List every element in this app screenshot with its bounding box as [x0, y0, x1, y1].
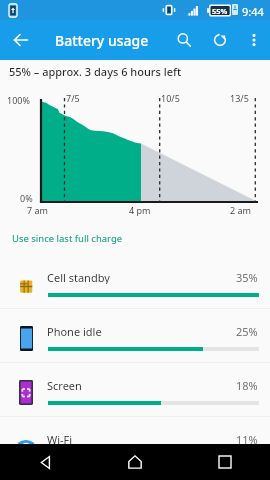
staticText: 25% [236, 324, 258, 338]
staticText: 100% [7, 94, 30, 106]
button[interactable]: Recent apps [180, 444, 270, 480]
staticText: 55% [212, 6, 228, 16]
button[interactable]: Wi-Fi [0, 417, 270, 471]
staticText: 18% [236, 378, 258, 392]
staticText: Phone idle [47, 324, 102, 338]
button[interactable]: Refresh [202, 22, 238, 58]
button[interactable]: Cell standby [0, 255, 270, 309]
staticText: Screen [47, 378, 82, 392]
button[interactable]: More options [238, 24, 270, 56]
button[interactable]: Back [0, 444, 90, 480]
button[interactable]: Home [90, 444, 180, 480]
button[interactable]: Back [0, 20, 42, 60]
staticText: 7 am [27, 204, 48, 216]
staticText: Cell standby [47, 270, 110, 284]
staticText: Use since last full charge [12, 232, 123, 245]
button[interactable]: Screen [0, 363, 270, 417]
staticText: 10/5 [161, 92, 180, 104]
staticText: 4 pm [129, 204, 151, 216]
staticText: 13/5 [230, 92, 249, 104]
staticText: 55% – approx. 3 days 6 hours left [9, 64, 182, 79]
staticText: Battery usage [55, 31, 149, 50]
staticText: 35% [236, 270, 258, 284]
button[interactable]: Search [166, 22, 202, 58]
staticText: 7/5 [66, 92, 80, 104]
staticText: 11% [236, 432, 258, 446]
staticText: 0% [20, 192, 33, 204]
staticText: Wi-Fi [47, 432, 73, 446]
staticText: 9:44 [242, 4, 264, 19]
button[interactable]: Phone idle [0, 309, 270, 363]
staticText: 2 am [230, 204, 251, 216]
